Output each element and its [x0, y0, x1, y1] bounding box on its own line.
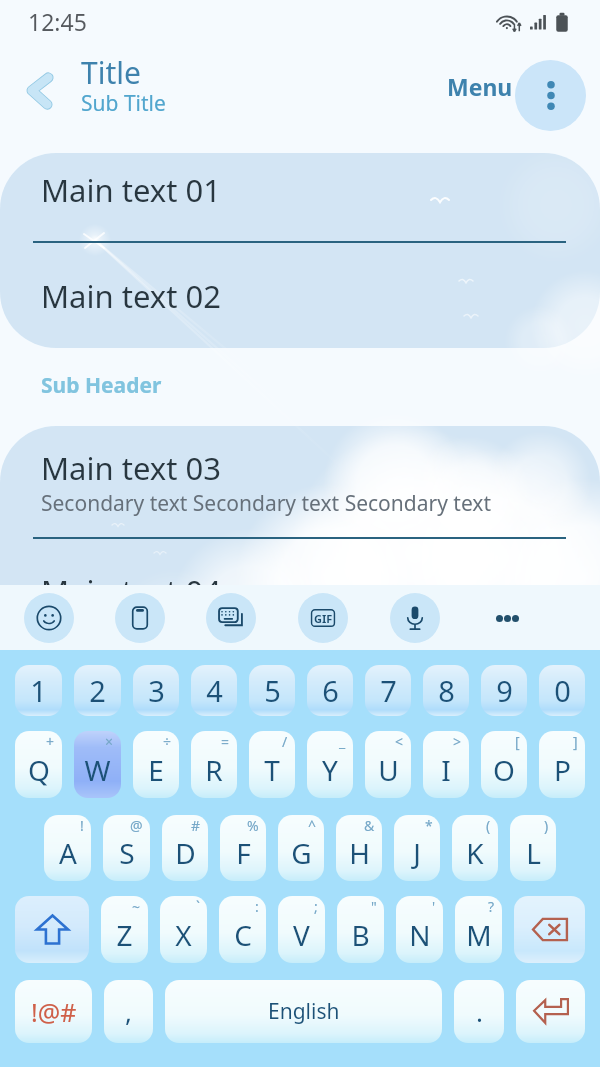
staticText: 12:45: [28, 6, 87, 37]
button[interactable]: Main text 03: [0, 426, 600, 537]
staticText: &: [364, 816, 375, 835]
staticText: #: [191, 816, 201, 835]
button[interactable]: ]: [539, 731, 585, 798]
staticText: U: [378, 751, 399, 789]
staticText: 2: [89, 671, 106, 710]
button[interactable]: Navigate up: [6, 67, 62, 123]
button[interactable]: More: [482, 593, 532, 643]
staticText: L: [526, 834, 541, 872]
staticText: =: [221, 732, 230, 751]
staticText: _: [339, 732, 346, 751]
button[interactable]: /: [249, 731, 295, 798]
button[interactable]: ': [396, 896, 443, 963]
staticText: >: [453, 732, 462, 751]
button[interactable]: @: [103, 815, 150, 881]
staticText: !@#: [31, 995, 77, 1029]
staticText: [: [515, 732, 520, 751]
button[interactable]: 8: [423, 665, 469, 716]
staticText: ]: [573, 732, 578, 751]
staticText: English: [268, 997, 340, 1026]
staticText: S: [119, 834, 135, 872]
button[interactable]: .: [454, 980, 504, 1043]
button[interactable]: Main text 01: [0, 153, 600, 241]
button[interactable]: ?: [455, 896, 502, 963]
staticText: E: [148, 751, 164, 789]
button[interactable]: Main text 04: [0, 539, 600, 643]
staticText: 1: [30, 671, 47, 710]
button[interactable]: [: [481, 731, 527, 798]
button[interactable]: Main text 02: [0, 243, 600, 348]
staticText: Title: [81, 52, 141, 93]
staticText: B: [351, 916, 370, 954]
staticText: Z: [116, 916, 133, 954]
staticText: ;: [314, 897, 318, 916]
staticText: ': [432, 897, 436, 916]
button[interactable]: #: [162, 815, 208, 881]
button[interactable]: Voice input: [390, 593, 440, 643]
staticText: Sub Header: [41, 371, 162, 400]
button[interactable]: ": [337, 896, 384, 963]
button[interactable]: 3: [133, 665, 179, 716]
button[interactable]: Enter: [516, 980, 585, 1043]
button[interactable]: English: [165, 980, 442, 1043]
button[interactable]: ,: [104, 980, 153, 1043]
button[interactable]: Emoji: [24, 593, 74, 643]
button[interactable]: ^: [278, 815, 324, 881]
staticText: 8: [438, 671, 455, 710]
staticText: H: [349, 834, 370, 872]
staticText: Main text 02: [41, 275, 221, 317]
staticText: M: [466, 916, 492, 954]
button[interactable]: ~: [101, 896, 148, 963]
staticText: 9: [496, 671, 513, 710]
button[interactable]: =: [191, 731, 237, 798]
button[interactable]: `: [160, 896, 207, 963]
button[interactable]: %: [220, 815, 266, 881]
staticText: +: [46, 732, 55, 751]
staticText: ?: [488, 897, 495, 916]
button[interactable]: ÷: [133, 731, 179, 798]
button[interactable]: ×: [74, 731, 121, 798]
button[interactable]: !@#: [15, 980, 92, 1043]
button[interactable]: _: [307, 731, 353, 798]
staticText: (: [486, 816, 491, 835]
button[interactable]: +: [15, 731, 62, 798]
staticText: K: [466, 834, 484, 872]
button[interactable]: Keyboard modes: [206, 593, 256, 643]
button[interactable]: 1: [15, 665, 62, 716]
staticText: ×: [105, 732, 114, 751]
button[interactable]: More options: [515, 60, 586, 131]
button[interactable]: 7: [365, 665, 411, 716]
button[interactable]: Shift: [15, 896, 89, 963]
staticText: G: [291, 834, 312, 872]
button[interactable]: :: [219, 896, 266, 963]
staticText: ~: [132, 897, 141, 916]
staticText: ,: [125, 994, 132, 1029]
staticText: 7: [380, 671, 397, 710]
staticText: X: [175, 916, 192, 954]
button[interactable]: Backspace: [514, 896, 585, 963]
button[interactable]: 2: [74, 665, 121, 716]
staticText: Menu: [447, 71, 513, 102]
button[interactable]: Clipboard: [115, 593, 165, 643]
button[interactable]: 9: [481, 665, 527, 716]
button[interactable]: 0: [539, 665, 585, 716]
button[interactable]: 6: [307, 665, 353, 716]
staticText: .: [476, 994, 483, 1029]
button[interactable]: >: [423, 731, 469, 798]
staticText: 0: [554, 671, 571, 710]
staticText: Main text 03: [41, 447, 221, 489]
button[interactable]: Menu: [445, 65, 515, 108]
button[interactable]: *: [394, 815, 440, 881]
button[interactable]: 5: [249, 665, 295, 716]
button[interactable]: 4: [191, 665, 237, 716]
button[interactable]: ): [510, 815, 556, 881]
button[interactable]: ;: [278, 896, 325, 963]
staticText: Secondary text Secondary text Secondary …: [41, 489, 492, 518]
staticText: ÷: [163, 732, 172, 751]
button[interactable]: &: [336, 815, 382, 881]
staticText: %: [247, 816, 259, 835]
button[interactable]: <: [365, 731, 411, 798]
button[interactable]: GIF: [298, 593, 348, 643]
button[interactable]: (: [452, 815, 498, 881]
button[interactable]: !: [44, 815, 91, 881]
